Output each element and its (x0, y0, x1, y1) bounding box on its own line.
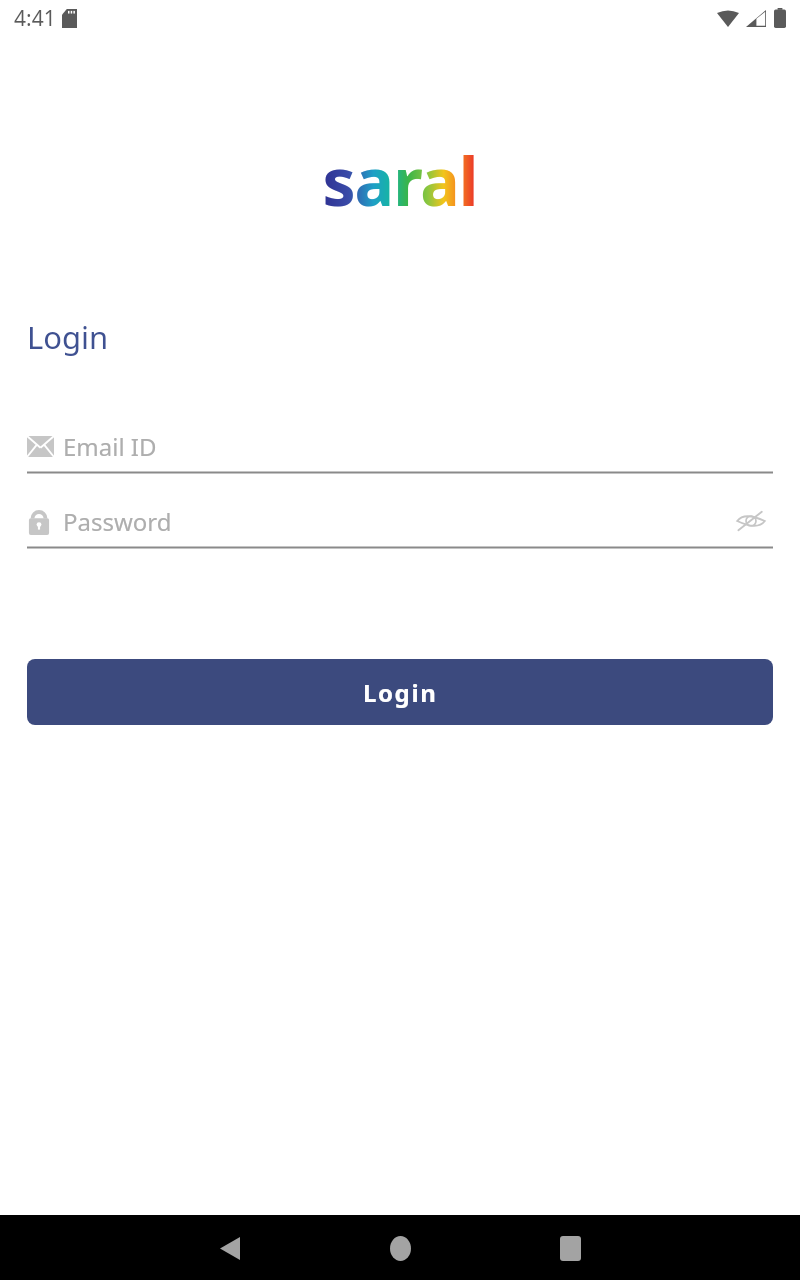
button[interactable]: Login (27, 659, 773, 725)
button[interactable]: Email ID (27, 421, 773, 474)
button[interactable]: Show password (729, 499, 773, 543)
button[interactable]: Back (200, 1218, 260, 1278)
staticText: 4:41 (14, 4, 56, 33)
staticText: Email ID (63, 430, 157, 463)
staticText: Password (63, 505, 172, 538)
staticText: Login (363, 676, 438, 709)
button[interactable]: Recent apps (540, 1218, 600, 1278)
staticText: saral (322, 135, 478, 225)
staticText: Login (27, 316, 109, 358)
button[interactable]: Password (27, 496, 773, 549)
button[interactable]: Home (370, 1218, 430, 1278)
